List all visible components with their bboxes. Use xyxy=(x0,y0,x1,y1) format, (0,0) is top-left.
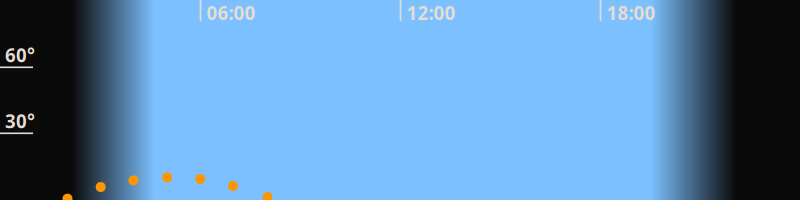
staticText: 06:00 xyxy=(206,0,255,25)
staticText: 18:00 xyxy=(606,0,655,25)
staticText: 30° xyxy=(5,109,35,133)
staticText: 60° xyxy=(5,43,35,67)
staticText: 12:00 xyxy=(406,0,455,25)
button[interactable]: Sun elevation chart xyxy=(0,0,800,200)
